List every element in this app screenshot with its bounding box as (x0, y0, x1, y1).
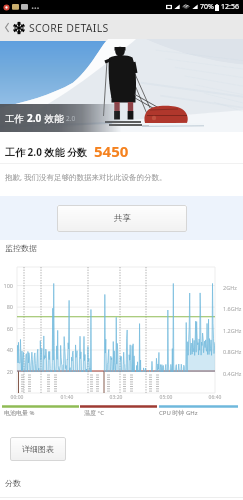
button[interactable]: 共享 (57, 205, 187, 232)
staticText: 01:40 (56, 394, 78, 401)
staticText: 效能 (42, 112, 64, 125)
staticText: 抱歉, 我们没有足够的数据来对比此设备的分数。 (5, 172, 167, 182)
staticText: SCORE DETAILS (29, 21, 109, 35)
staticText: 20 (0, 368, 13, 375)
staticText: 0.8GHz (223, 348, 242, 355)
staticText: 0.4GHz (223, 370, 242, 377)
staticText: 分数 (5, 478, 21, 488)
staticText: 03:20 (105, 394, 127, 401)
staticText: 2.0 (66, 114, 76, 123)
staticText: 详细图表 (22, 444, 54, 454)
button[interactable]: Back (1, 14, 13, 41)
staticText: 80 (0, 303, 13, 310)
staticText: 电池电量 % (4, 409, 35, 417)
staticText: 12:56 (221, 2, 239, 12)
staticText: 100 (0, 282, 13, 289)
staticText: 监控数据 (5, 243, 37, 253)
staticText: 共享 (114, 213, 131, 224)
staticText: 05:00 (155, 394, 177, 401)
staticText: 2.0 (27, 111, 42, 125)
button[interactable]: 详细图表 (10, 437, 66, 461)
staticText: 工作 (5, 112, 27, 125)
staticText: 70% (200, 2, 214, 12)
staticText: 60 (0, 325, 13, 332)
staticText: CPU 时钟 GHz (159, 409, 198, 417)
staticText: 1.2GHz (223, 327, 242, 334)
staticText: 2GHz (223, 284, 237, 291)
staticText: 工作 2.0 效能 分数 (5, 145, 88, 159)
staticText: 06:40 (204, 394, 226, 401)
staticText: 1.6GHz (223, 305, 242, 312)
staticText: 40 (0, 346, 13, 353)
staticText: 温度 °C (84, 409, 104, 417)
staticText: 5450 (94, 141, 129, 161)
staticText: 00:00 (6, 394, 28, 401)
